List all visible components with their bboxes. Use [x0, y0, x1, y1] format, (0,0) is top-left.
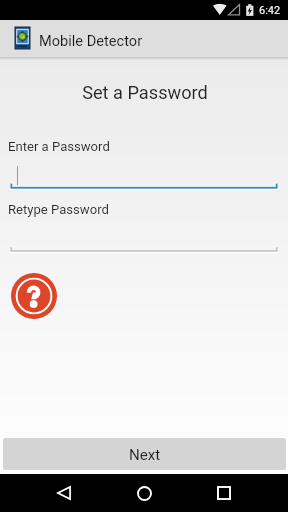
button[interactable]: Help — [11, 273, 57, 319]
staticText: 6:42 — [259, 4, 281, 17]
staticText: Set a Password — [1, 82, 288, 103]
button[interactable]: Recent apps — [204, 479, 244, 507]
staticText: Next — [129, 446, 161, 464]
staticText: Mobile Detector — [39, 32, 143, 49]
staticText: Enter a Password — [8, 139, 110, 154]
button[interactable]: Next — [3, 438, 286, 470]
button[interactable]: Back — [44, 479, 84, 507]
staticText: Retype Password — [8, 202, 109, 217]
button[interactable]: Home — [124, 479, 164, 507]
